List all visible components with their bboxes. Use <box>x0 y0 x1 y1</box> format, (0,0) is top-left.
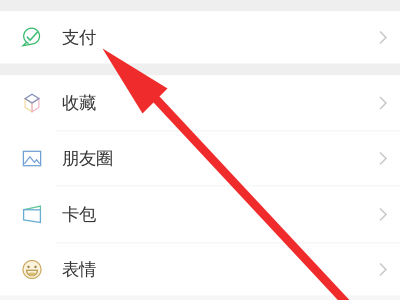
button[interactable]: 支付 <box>0 11 400 63</box>
button[interactable]: 收藏 <box>0 75 400 130</box>
staticText: 收藏 <box>62 92 96 114</box>
button[interactable]: 卡包 <box>0 186 400 242</box>
button[interactable]: 表情 <box>0 243 400 295</box>
staticText: 支付 <box>62 27 96 48</box>
staticText: 表情 <box>62 259 96 280</box>
staticText: 卡包 <box>62 204 96 225</box>
staticText: 朋友圈 <box>62 148 113 169</box>
button[interactable]: 朋友圈 <box>0 131 400 185</box>
